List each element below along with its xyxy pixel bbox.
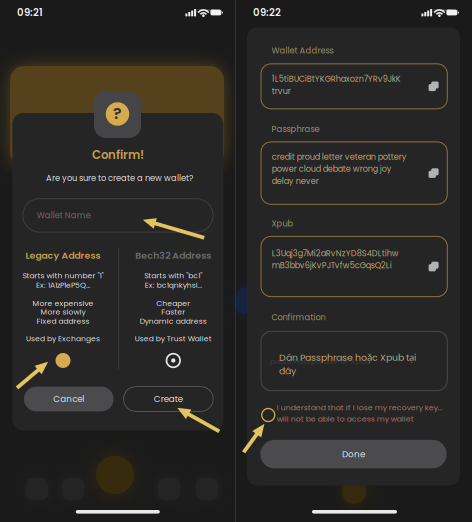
button[interactable]: Legacy address selected <box>55 353 70 368</box>
staticText: Ex: bc1qnkyhsl… <box>145 280 202 290</box>
staticText: mB3bbv6jKvPJTvfw5cGqsQ2Li <box>272 260 392 271</box>
staticText: Ex: 1A1zP1eP5Q… <box>36 280 90 290</box>
button[interactable]: Cancel <box>24 387 114 411</box>
staticText: Are you sure to create a new wallet? <box>46 172 193 184</box>
staticText: Legacy Address <box>25 249 100 262</box>
button[interactable]: Copy Passphrase <box>429 168 439 178</box>
staticText: Starts with number "1" <box>22 270 103 281</box>
staticText: Confirmation <box>271 311 325 323</box>
staticText: Confirm! <box>92 147 144 163</box>
staticText: Dán Passphrase hoặc Xpub tại <box>279 351 416 364</box>
staticText: 09:21 <box>17 5 43 19</box>
staticText: Faster <box>161 306 185 317</box>
staticText: Done <box>342 448 365 460</box>
staticText: Create <box>154 393 183 405</box>
staticText: More expensive <box>32 298 93 309</box>
staticText: Cancel <box>53 393 84 405</box>
staticText: Cheaper <box>156 298 190 309</box>
staticText: Used by Exchanges <box>26 333 100 344</box>
button[interactable]: Copy Wallet Address <box>429 81 439 91</box>
staticText: Starts with "bc1" <box>144 270 202 281</box>
button[interactable]: Create <box>123 387 213 411</box>
staticText: ? <box>113 102 122 125</box>
staticText: I understand that if I lose my recovery … <box>277 402 442 413</box>
staticText: delay never <box>272 175 319 187</box>
staticText: power cloud debate wrong joy <box>272 163 392 175</box>
staticText: Xpub <box>271 218 293 229</box>
button[interactable]: Bech32 address option <box>166 353 181 368</box>
staticText: 1L5tiBUCiBtYKGRhaxozn7YRv9JkK <box>272 73 401 85</box>
button[interactable]: Copy Xpub <box>429 262 439 271</box>
staticText: credit proud letter veteran pottery <box>272 151 407 163</box>
staticText: paste Passphrase or Xpub <box>270 356 370 367</box>
staticText: Dynamic address <box>140 316 207 326</box>
staticText: Wallet Address <box>271 45 333 56</box>
staticText: will not be able to access my wallet <box>277 413 414 424</box>
staticText: đây <box>279 364 296 377</box>
staticText: L3Uqj3g7Mi2aRvNzYD8S4DLtihw <box>272 248 399 259</box>
staticText: Wallet Name <box>37 210 91 221</box>
staticText: Passphrase <box>271 123 319 135</box>
staticText: Fixed address <box>36 316 89 326</box>
button[interactable]: Done <box>260 440 447 468</box>
staticText: Bech32 Address <box>135 249 211 262</box>
staticText: More slowly <box>40 306 85 317</box>
staticText: Used by Trust Wallet <box>135 333 212 344</box>
staticText: trvur <box>272 85 291 97</box>
button[interactable]: I understand that if I lose my recovery … <box>261 403 441 427</box>
button[interactable]: Wallet Name <box>23 199 213 232</box>
staticText: 09:22 <box>253 5 281 19</box>
